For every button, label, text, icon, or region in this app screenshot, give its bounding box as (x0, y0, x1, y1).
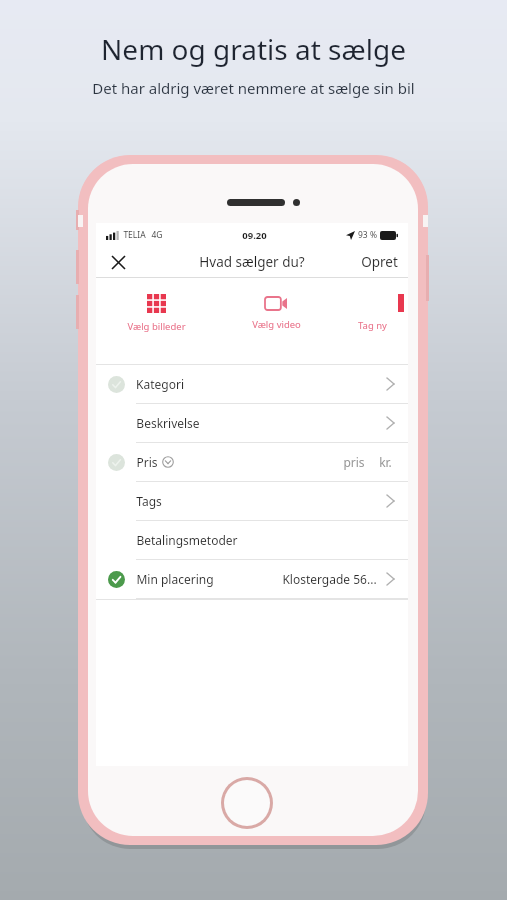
button[interactable]: Vælg video (216, 278, 336, 348)
staticText: Det har aldrig været nemmere at sælge si… (92, 78, 415, 98)
staticText: Hvad sælger du? (199, 253, 305, 271)
staticText: Klostergade 56... (282, 571, 377, 587)
staticText: Vælg billeder (127, 320, 186, 333)
staticText: 4G (151, 229, 163, 241)
button[interactable]: Betalingsmetoder (96, 521, 408, 559)
staticText: Pris (136, 454, 158, 470)
button[interactable]: Opret (359, 249, 400, 275)
button[interactable]: Tag ny (336, 278, 408, 348)
staticText: Vælg video (252, 318, 301, 331)
button[interactable]: Tags (96, 482, 408, 520)
button[interactable]: Luk (104, 248, 132, 276)
staticText: Betalingsmetoder (136, 532, 238, 548)
button[interactable]: Min placering (96, 560, 408, 598)
staticText: 09.20 (242, 229, 267, 242)
staticText: 93 % (358, 229, 377, 241)
staticText: Opret (361, 253, 398, 271)
staticText: Tags (136, 493, 162, 509)
staticText: TELIA (123, 229, 146, 241)
staticText: kr. (379, 454, 392, 470)
staticText: Beskrivelse (136, 415, 200, 431)
staticText: pris (343, 454, 365, 470)
staticText: Min placering (136, 571, 214, 587)
button[interactable]: Pris (96, 443, 408, 481)
staticText: Nem og gratis at sælge (101, 30, 406, 68)
other: Home (221, 777, 273, 829)
button[interactable]: Beskrivelse (96, 404, 408, 442)
button[interactable]: Vælg billeder (96, 278, 216, 348)
staticText: Tag ny (358, 319, 387, 332)
staticText: Kategori (136, 376, 184, 392)
button[interactable]: Kategori (96, 365, 408, 403)
